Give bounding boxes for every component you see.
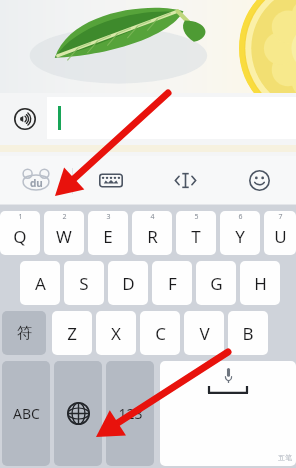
button[interactable]: D [108, 261, 148, 305]
staticText: U [274, 225, 287, 248]
button[interactable]: 4 [132, 211, 172, 255]
staticText: F [168, 272, 177, 295]
button[interactable]: B [228, 311, 268, 355]
button[interactable]: Keyboard layout [73, 156, 148, 205]
button[interactable]: Read aloud [8, 102, 42, 136]
button[interactable]: V [184, 311, 224, 355]
staticText: A [35, 272, 46, 295]
staticText: ABC [13, 404, 40, 423]
button[interactable]: 1 [0, 211, 40, 255]
button[interactable]: F [152, 261, 192, 305]
staticText: G [210, 272, 223, 295]
button[interactable]: 2 [44, 211, 84, 255]
button[interactable]: Z [52, 311, 92, 355]
button[interactable]: 3 [88, 211, 128, 255]
staticText: Z [67, 322, 77, 345]
button[interactable]: Emoji [222, 156, 296, 205]
staticText: Y [235, 225, 245, 248]
staticText: du [30, 176, 43, 190]
staticText: B [242, 322, 254, 345]
staticText: T [191, 225, 201, 248]
staticText: 6 [238, 212, 243, 222]
button[interactable]: 5 [176, 211, 216, 255]
button[interactable]: X [96, 311, 136, 355]
button[interactable]: Baidu input method [0, 156, 72, 205]
button[interactable] [47, 97, 296, 139]
button[interactable]: 符 [2, 311, 46, 355]
staticText: V [199, 322, 210, 345]
button[interactable]: C [140, 311, 180, 355]
staticText: 123 [118, 404, 143, 423]
staticText: 7 [278, 212, 283, 222]
staticText: 4 [150, 212, 155, 222]
staticText: 5 [194, 212, 199, 222]
button[interactable]: 123 [106, 361, 154, 466]
staticText: S [79, 272, 89, 295]
staticText: X [111, 322, 121, 345]
button[interactable]: Switch language [54, 361, 102, 466]
button[interactable]: S [64, 261, 104, 305]
button[interactable]: Move cursor [148, 156, 222, 205]
staticText: 符 [17, 324, 32, 343]
staticText: H [254, 272, 267, 295]
staticText: W [56, 225, 72, 248]
staticText: 3 [106, 212, 111, 222]
staticText: E [103, 225, 113, 248]
button[interactable]: ABC [2, 361, 50, 466]
button[interactable]: 7 [264, 211, 296, 255]
staticText: 1 [18, 212, 23, 222]
staticText: 五笔 [278, 453, 292, 462]
staticText: C [155, 322, 166, 345]
staticText: R [147, 225, 158, 248]
staticText: 2 [62, 212, 67, 222]
button[interactable]: G [196, 261, 236, 305]
staticText: D [122, 272, 135, 295]
button[interactable]: 6 [220, 211, 260, 255]
button[interactable]: Space [160, 361, 296, 466]
button[interactable]: A [20, 261, 60, 305]
staticText: Q [13, 225, 27, 248]
button[interactable]: H [240, 261, 280, 305]
